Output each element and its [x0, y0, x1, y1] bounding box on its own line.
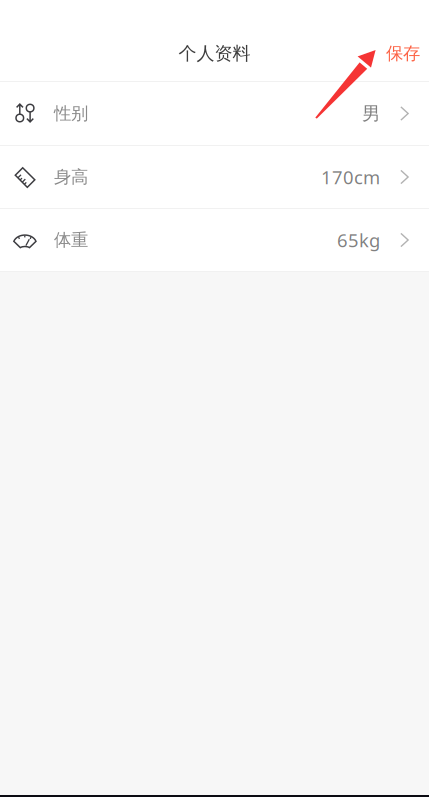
- staticText: 65kg: [337, 227, 380, 253]
- button[interactable]: 保存: [368, 31, 429, 76]
- staticText: 个人资料: [178, 42, 250, 65]
- button[interactable]: 体重: [0, 209, 429, 272]
- staticText: 170cm: [321, 164, 380, 190]
- button[interactable]: 性别: [0, 82, 429, 146]
- staticText: 体重: [54, 229, 88, 251]
- staticText: 男: [362, 102, 380, 125]
- staticText: 身高: [54, 166, 88, 188]
- button[interactable]: 身高: [0, 146, 429, 209]
- staticText: 性别: [54, 103, 88, 124]
- staticText: 保存: [386, 43, 420, 64]
